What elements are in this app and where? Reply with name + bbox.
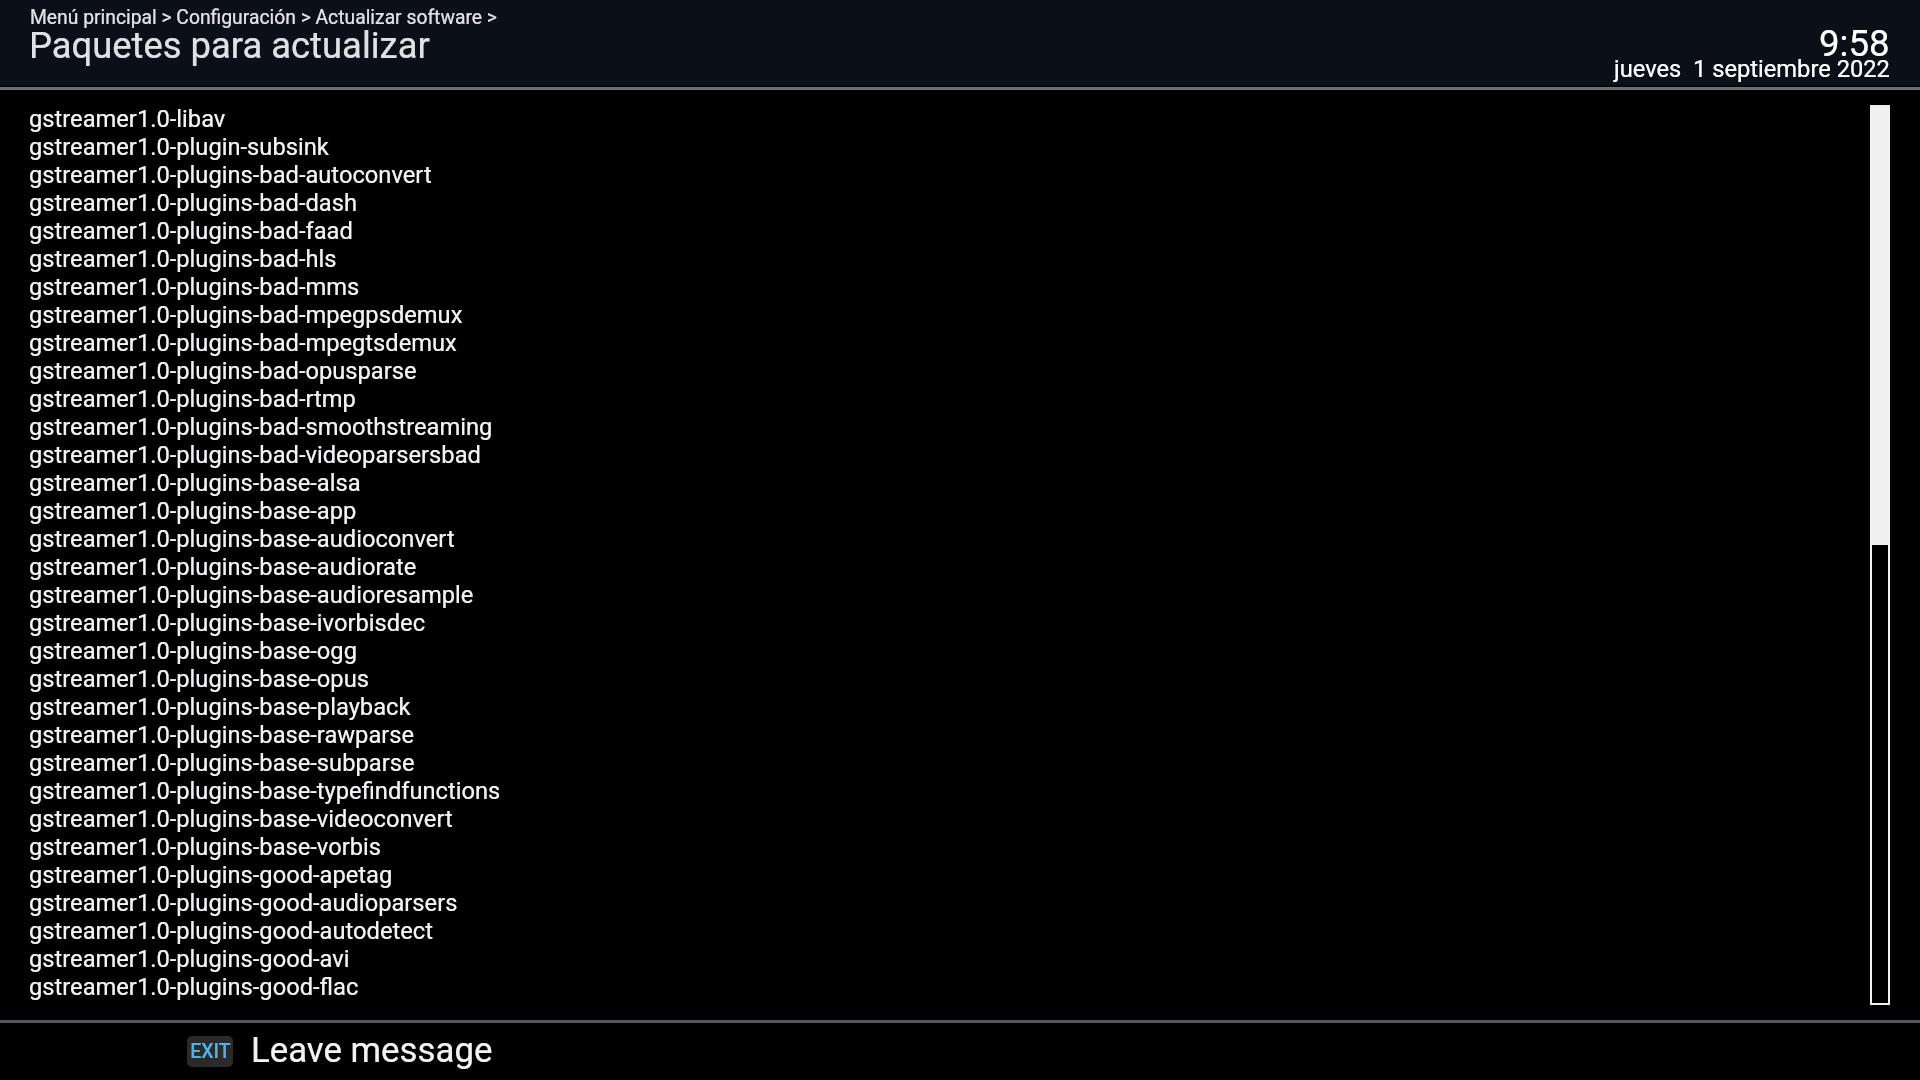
button[interactable]: gstreamer1.0-plugins-bad-mpegtsdemux — [29, 329, 1869, 357]
staticText: gstreamer1.0-plugins-good-apetag — [29, 861, 393, 889]
button[interactable]: gstreamer1.0-plugins-base-videoconvert — [29, 805, 1869, 833]
staticText: gstreamer1.0-plugins-base-videoconvert — [29, 805, 453, 833]
button[interactable]: gstreamer1.0-plugins-bad-faad — [29, 217, 1869, 245]
staticText: EXIT — [190, 1040, 231, 1063]
staticText: Menú principal > Configuración > Actuali… — [30, 6, 497, 29]
staticText: gstreamer1.0-plugins-base-playback — [29, 693, 411, 721]
button[interactable]: EXIT — [180, 1022, 493, 1079]
button[interactable]: gstreamer1.0-plugins-base-subparse — [29, 749, 1869, 777]
button[interactable]: gstreamer1.0-plugins-good-apetag — [29, 861, 1869, 889]
staticText: gstreamer1.0-plugins-good-avi — [29, 945, 350, 973]
button[interactable]: gstreamer1.0-plugins-good-avi — [29, 945, 1869, 973]
button[interactable]: Menú principal > Configuración > Actuali… — [29, 6, 498, 29]
staticText: Leave message — [251, 1030, 493, 1071]
button[interactable]: gstreamer1.0-plugins-base-ivorbisdec — [29, 609, 1869, 637]
button[interactable]: gstreamer1.0-plugins-bad-mpegpsdemux — [29, 301, 1869, 329]
staticText: gstreamer1.0-plugins-base-audioresample — [29, 581, 474, 609]
staticText: gstreamer1.0-plugins-bad-dash — [29, 189, 357, 217]
button[interactable]: gstreamer1.0-plugins-bad-mms — [29, 273, 1869, 301]
staticText: gstreamer1.0-plugins-base-rawparse — [29, 721, 415, 749]
button[interactable]: gstreamer1.0-plugins-base-audioconvert — [29, 525, 1869, 553]
staticText: gstreamer1.0-plugins-base-ogg — [29, 637, 357, 665]
staticText: gstreamer1.0-plugins-base-audiorate — [29, 553, 417, 581]
staticText: gstreamer1.0-plugins-bad-smoothstreaming — [29, 413, 493, 441]
button[interactable]: gstreamer1.0-plugins-base-audioresample — [29, 581, 1869, 609]
button[interactable]: gstreamer1.0-plugins-base-audiorate — [29, 553, 1869, 581]
staticText: gstreamer1.0-plugins-base-app — [29, 497, 357, 525]
button[interactable]: gstreamer1.0-plugins-base-typefindfuncti… — [29, 777, 1869, 805]
staticText: gstreamer1.0-plugins-bad-mpegtsdemux — [29, 329, 457, 357]
button[interactable]: gstreamer1.0-plugins-bad-videoparsersbad — [29, 441, 1869, 469]
staticText: gstreamer1.0-plugins-bad-rtmp — [29, 385, 356, 413]
staticText: gstreamer1.0-plugins-good-audioparsers — [29, 889, 458, 917]
button[interactable]: gstreamer1.0-plugins-good-autodetect — [29, 917, 1869, 945]
staticText: jueves 1 septiembre 2022 — [1614, 55, 1890, 83]
button[interactable]: gstreamer1.0-plugins-base-rawparse — [29, 721, 1869, 749]
staticText: gstreamer1.0-plugin-subsink — [29, 133, 329, 161]
staticText: gstreamer1.0-plugins-bad-hls — [29, 245, 337, 273]
button[interactable]: gstreamer1.0-plugins-base-ogg — [29, 637, 1869, 665]
staticText: gstreamer1.0-plugins-base-typefindfuncti… — [29, 777, 501, 805]
button[interactable]: gstreamer1.0-plugins-base-alsa — [29, 469, 1869, 497]
staticText: gstreamer1.0-plugins-base-opus — [29, 665, 369, 693]
staticText: Paquetes para actualizar — [29, 24, 430, 67]
staticText: gstreamer1.0-plugins-bad-faad — [29, 217, 353, 245]
staticText: gstreamer1.0-plugins-base-subparse — [29, 749, 415, 777]
staticText: gstreamer1.0-plugins-bad-opusparse — [29, 357, 417, 385]
button[interactable]: gstreamer1.0-plugins-bad-dash — [29, 189, 1869, 217]
staticText: gstreamer1.0-plugins-bad-videoparsersbad — [29, 441, 481, 469]
staticText: gstreamer1.0-plugins-base-audioconvert — [29, 525, 455, 553]
button[interactable]: Scroll position — [1870, 105, 1890, 1005]
staticText: gstreamer1.0-plugins-base-ivorbisdec — [29, 609, 426, 637]
button[interactable]: gstreamer1.0-plugins-bad-opusparse — [29, 357, 1869, 385]
staticText: gstreamer1.0-plugins-base-vorbis — [29, 833, 381, 861]
button[interactable]: gstreamer1.0-plugins-good-flac — [29, 973, 1869, 1001]
staticText: 9:58 — [1819, 22, 1890, 65]
button[interactable]: gstreamer1.0-plugins-bad-hls — [29, 245, 1869, 273]
button[interactable]: gstreamer1.0-plugin-subsink — [29, 133, 1869, 161]
staticText: gstreamer1.0-plugins-bad-mpegpsdemux — [29, 301, 463, 329]
button[interactable]: gstreamer1.0-plugins-good-audioparsers — [29, 889, 1869, 917]
staticText: gstreamer1.0-libav — [29, 105, 226, 133]
button[interactable]: gstreamer1.0-plugins-base-opus — [29, 665, 1869, 693]
button[interactable]: gstreamer1.0-plugins-bad-smoothstreaming — [29, 413, 1869, 441]
staticText: gstreamer1.0-plugins-bad-autoconvert — [29, 161, 432, 189]
staticText: gstreamer1.0-plugins-bad-mms — [29, 273, 360, 301]
button[interactable]: gstreamer1.0-libav — [29, 105, 1869, 133]
button[interactable]: gstreamer1.0-plugins-bad-rtmp — [29, 385, 1869, 413]
staticText: gstreamer1.0-plugins-good-flac — [29, 973, 359, 1001]
staticText: gstreamer1.0-plugins-good-autodetect — [29, 917, 433, 945]
button[interactable]: gstreamer1.0-plugins-base-vorbis — [29, 833, 1869, 861]
staticText: gstreamer1.0-plugins-base-alsa — [29, 469, 361, 497]
button[interactable]: gstreamer1.0-plugins-bad-autoconvert — [29, 161, 1869, 189]
button[interactable]: gstreamer1.0-plugins-base-playback — [29, 693, 1869, 721]
button[interactable]: gstreamer1.0-plugins-base-app — [29, 497, 1869, 525]
